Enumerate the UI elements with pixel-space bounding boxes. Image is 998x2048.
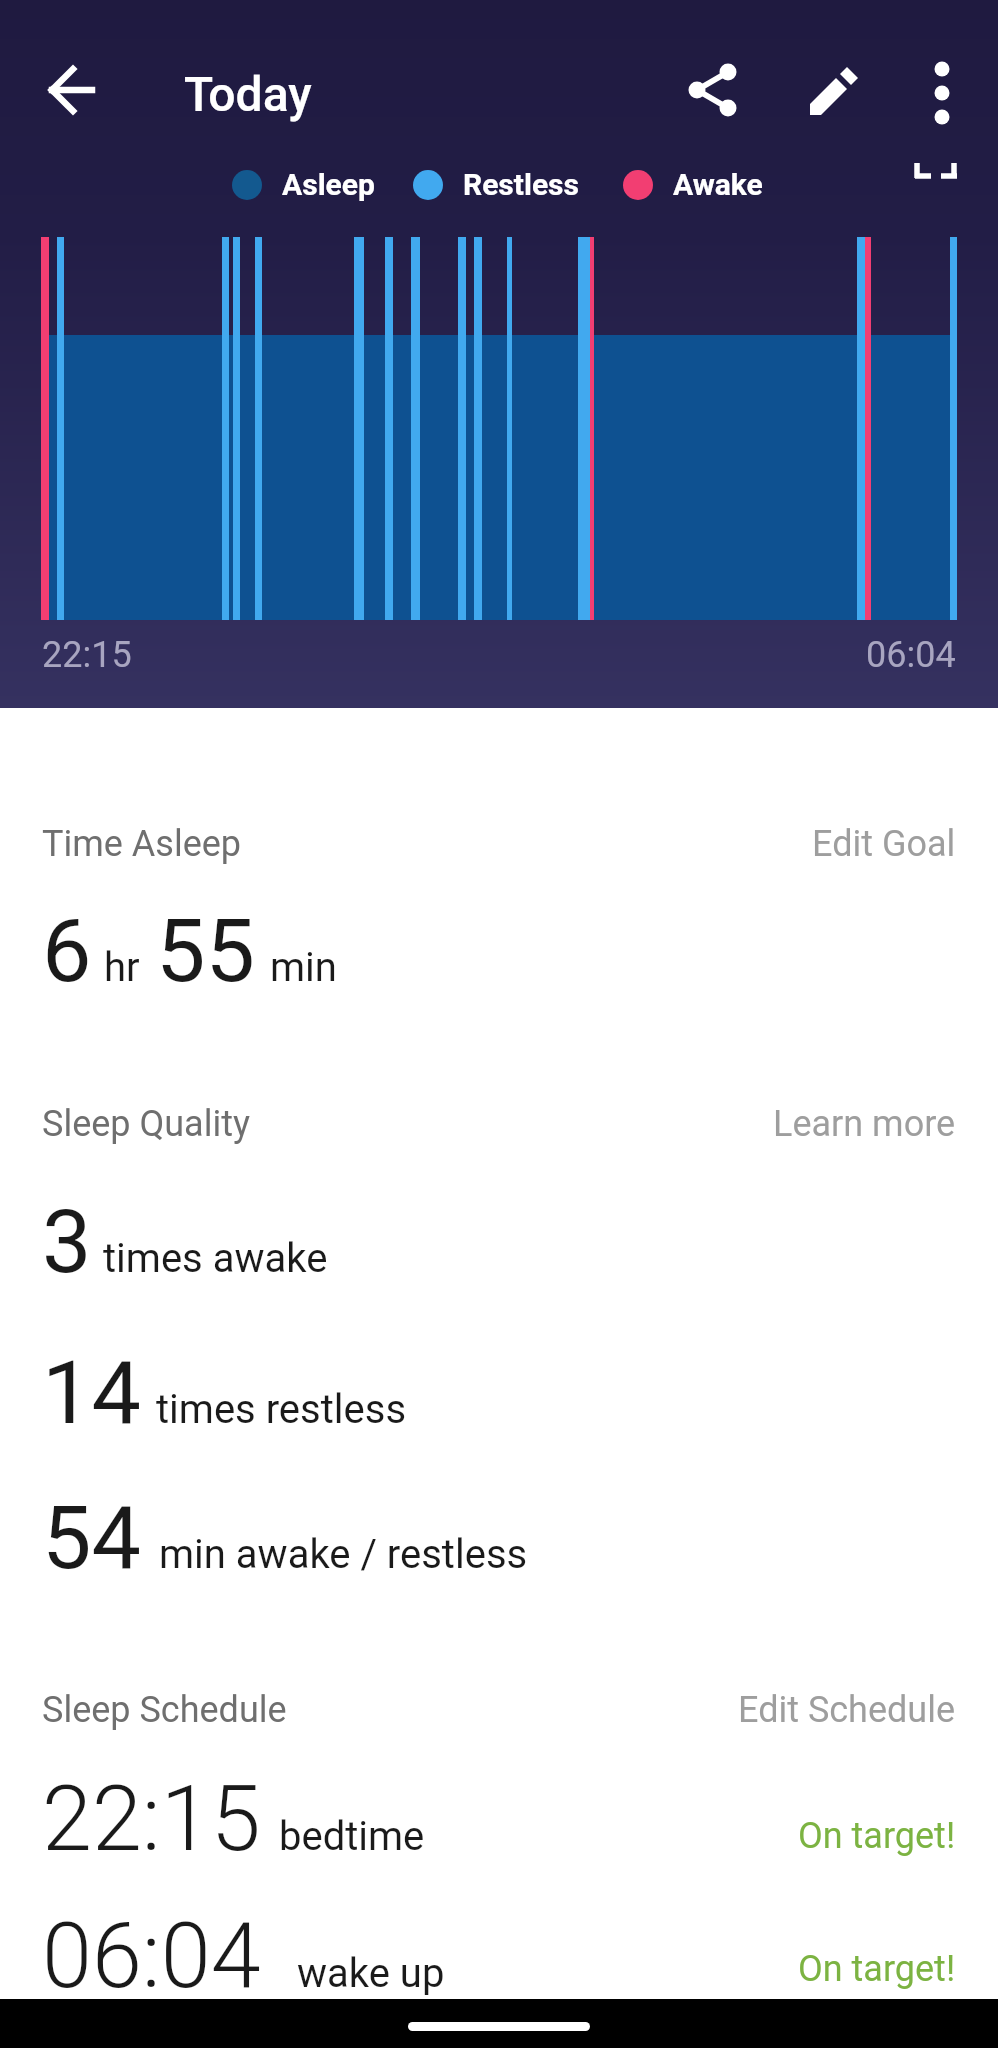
staticText: Restless — [463, 167, 579, 202]
staticText: times restless — [156, 1386, 407, 1433]
staticText: On target! — [798, 1948, 956, 1990]
staticText: Today — [184, 66, 312, 122]
staticText: Time Asleep — [42, 823, 242, 865]
staticText: hr — [104, 944, 140, 991]
staticText: Sleep Schedule — [42, 1689, 287, 1731]
staticText: Sleep Quality — [42, 1103, 250, 1145]
staticText: 06:04 — [42, 1904, 261, 2009]
button[interactable]: Edit Goal — [812, 823, 956, 865]
staticText: wake up — [297, 1950, 445, 1997]
staticText: 55 — [156, 899, 255, 1002]
staticText: 14 — [42, 1341, 141, 1444]
staticText: bedtime — [279, 1813, 425, 1860]
staticText: min — [270, 944, 337, 991]
staticText: 54 — [42, 1486, 141, 1589]
button[interactable]: Awake — [623, 167, 763, 202]
staticText: 06:04 — [866, 634, 956, 676]
staticText: On target! — [798, 1815, 956, 1857]
button[interactable]: Asleep — [232, 167, 375, 202]
button[interactable]: Learn more — [773, 1103, 956, 1145]
staticText: times awake — [103, 1235, 328, 1282]
button[interactable] — [681, 59, 743, 121]
staticText: 22:15 — [42, 1767, 261, 1872]
button[interactable] — [801, 59, 863, 121]
button[interactable] — [0, 1999, 998, 2048]
button[interactable] — [914, 156, 962, 204]
button[interactable] — [34, 54, 106, 126]
button[interactable]: Edit Schedule — [738, 1689, 956, 1731]
button[interactable] — [911, 59, 973, 121]
staticText: min awake / restless — [159, 1531, 528, 1578]
staticText: 6 — [42, 899, 92, 1002]
staticText: 3 — [42, 1190, 92, 1293]
staticText: Asleep — [282, 167, 375, 202]
staticText: Awake — [673, 167, 763, 202]
staticText: 22:15 — [42, 634, 132, 676]
button[interactable]: Restless — [413, 167, 579, 202]
